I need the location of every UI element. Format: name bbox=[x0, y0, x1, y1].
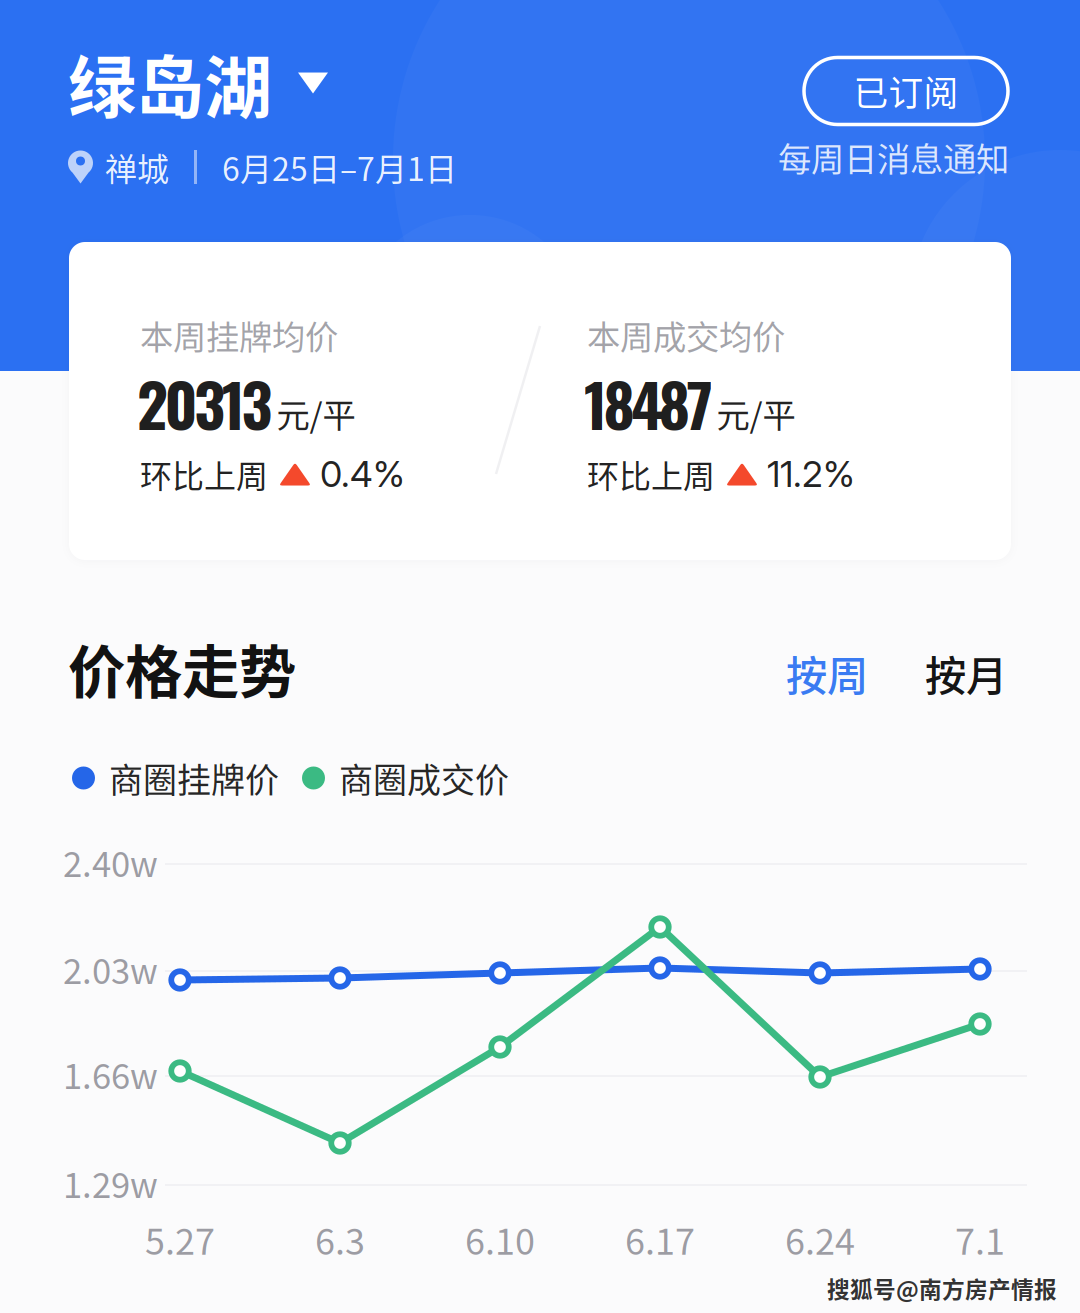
staticText: 7.1 bbox=[955, 1213, 1005, 1265]
staticText: 6月25日–7月1日 bbox=[222, 144, 457, 190]
staticText: 11.2% bbox=[767, 452, 855, 496]
staticText: 6.17 bbox=[625, 1213, 695, 1265]
staticText: 按周 bbox=[786, 643, 868, 703]
staticText: 18487 bbox=[584, 358, 712, 447]
staticText: 元/平 bbox=[276, 389, 355, 437]
staticText: 1.29w bbox=[63, 1158, 158, 1208]
button[interactable]: 按周 bbox=[782, 643, 872, 703]
staticText: 价格走势 bbox=[68, 626, 296, 709]
staticText: 环比上周 bbox=[587, 451, 715, 497]
staticText: 环比上周 bbox=[140, 451, 268, 497]
staticText: 2.03w bbox=[63, 944, 158, 994]
button[interactable]: 按月 bbox=[921, 643, 1011, 703]
staticText: 2.40w bbox=[63, 837, 158, 887]
staticText: 已订阅 bbox=[853, 66, 958, 116]
staticText: 6.10 bbox=[465, 1213, 535, 1265]
staticText: 商圈挂牌价 bbox=[109, 753, 279, 803]
staticText: 6.24 bbox=[785, 1213, 855, 1265]
staticText: 6.3 bbox=[315, 1213, 365, 1265]
staticText: 本周成交均价 bbox=[587, 311, 785, 359]
staticText: 每周日消息通知 bbox=[778, 133, 1009, 181]
staticText: 元/平 bbox=[716, 389, 795, 437]
staticText: 5.27 bbox=[145, 1213, 215, 1265]
staticText: 本周挂牌均价 bbox=[140, 311, 338, 359]
staticText: 绿岛湖 bbox=[68, 34, 272, 132]
staticText: 0.4% bbox=[320, 452, 405, 496]
button[interactable]: 已订阅 bbox=[804, 57, 1008, 124]
staticText: 搜狐号@南方房产情报 bbox=[827, 1272, 1057, 1304]
button[interactable]: 绿岛湖 bbox=[68, 34, 368, 132]
staticText: 禅城 bbox=[105, 144, 169, 190]
staticText: 商圈成交价 bbox=[339, 753, 509, 803]
staticText: 按月 bbox=[925, 643, 1007, 703]
staticText: 1.66w bbox=[63, 1049, 158, 1099]
staticText: 20313 bbox=[137, 358, 272, 447]
